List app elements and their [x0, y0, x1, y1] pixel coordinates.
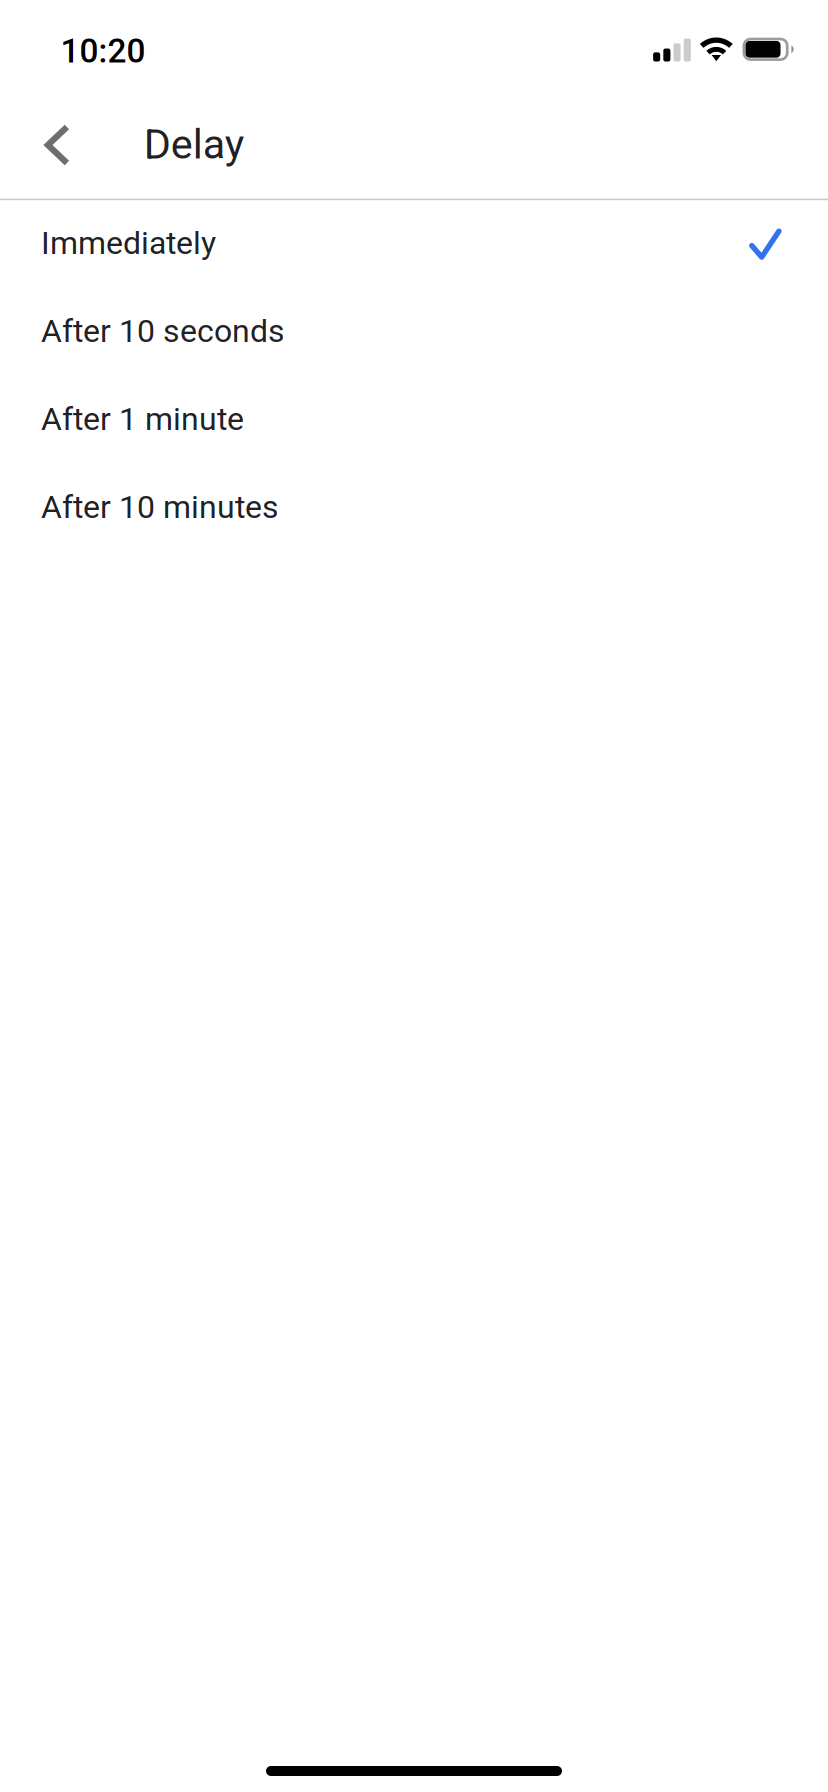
button[interactable]: After 10 minutes: [0, 464, 828, 552]
staticText: After 10 seconds: [41, 312, 285, 350]
button[interactable]: Back: [22, 100, 92, 188]
button[interactable]: After 1 minute: [0, 376, 828, 464]
staticText: After 1 minute: [41, 400, 244, 438]
staticText: Delay: [144, 120, 245, 169]
button[interactable]: After 10 seconds: [0, 288, 828, 376]
staticText: 10:20: [60, 32, 145, 71]
staticText: Immediately: [41, 224, 216, 262]
button[interactable]: Immediately: [0, 200, 828, 288]
staticText: After 10 minutes: [41, 488, 279, 526]
